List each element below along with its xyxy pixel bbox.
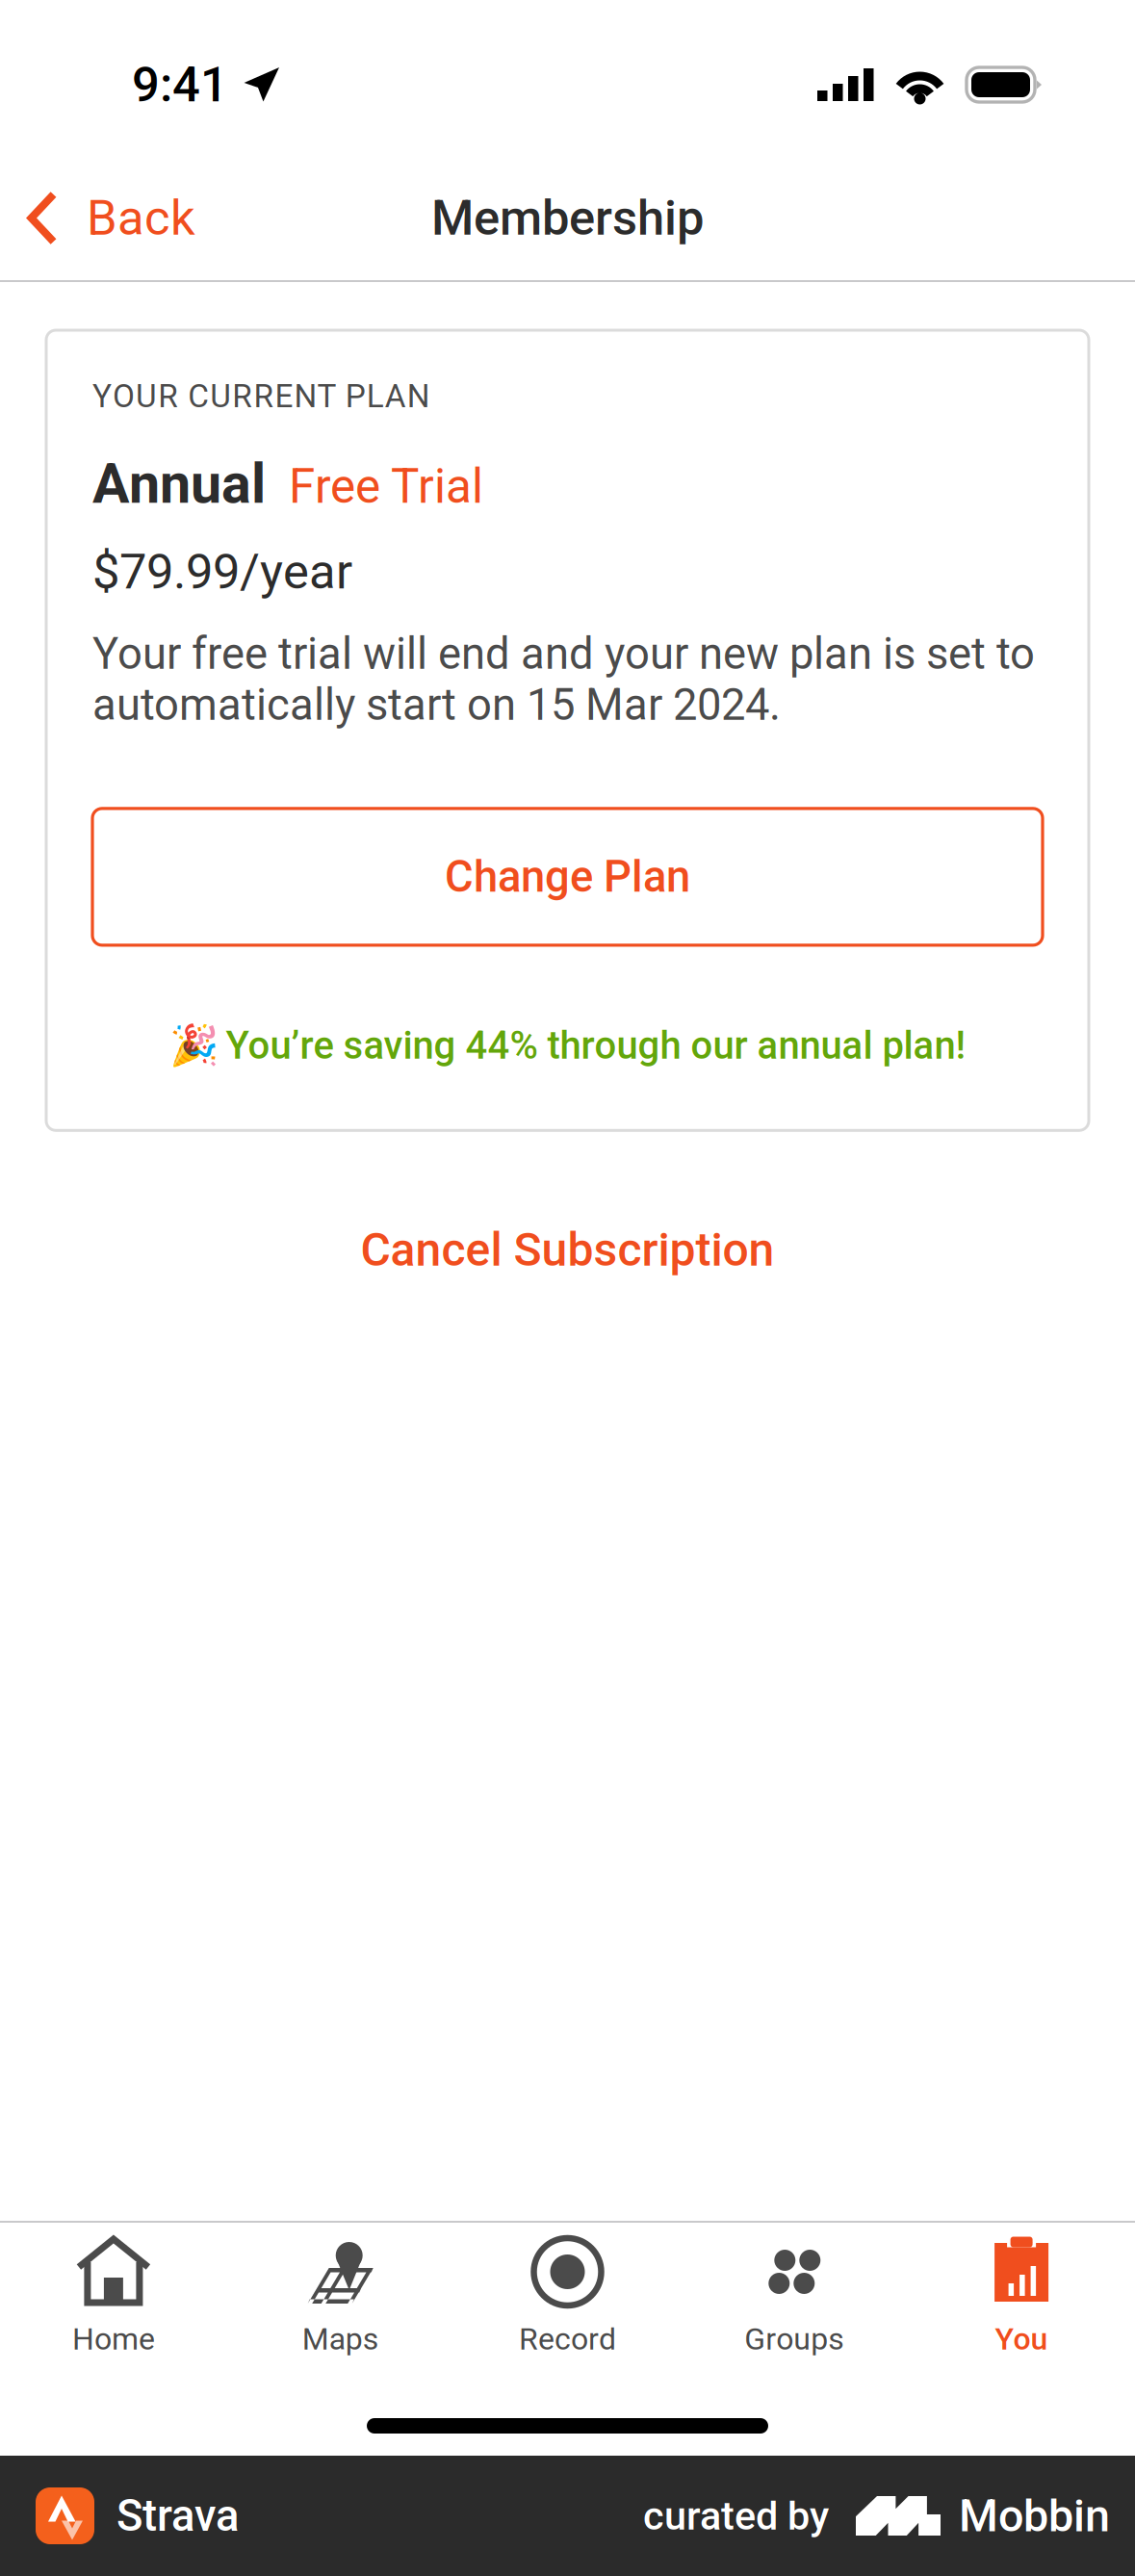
- button[interactable]: Groups: [681, 2223, 908, 2357]
- staticText: Free Trial: [289, 459, 483, 514]
- staticText: Mobbin: [959, 2490, 1110, 2542]
- button[interactable]: Record: [454, 2223, 681, 2357]
- button[interactable]: You: [908, 2223, 1135, 2357]
- staticText: Record: [519, 2321, 616, 2357]
- staticText: Annual: [92, 452, 266, 516]
- button[interactable]: Home: [0, 2223, 227, 2357]
- button[interactable]: Maps: [227, 2223, 454, 2357]
- staticText: You’re saving 44% through our annual pla…: [226, 1023, 966, 1068]
- staticText: Groups: [744, 2321, 845, 2357]
- staticText: 9:41: [132, 56, 228, 113]
- staticText: Your free trial will end and your new pl…: [92, 628, 1035, 730]
- staticText: Cancel Subscription: [361, 1223, 774, 1277]
- staticText: Home: [72, 2321, 155, 2357]
- button[interactable]: Back: [0, 170, 220, 266]
- staticText: Membership: [431, 189, 704, 247]
- staticText: 🎉: [169, 1022, 218, 1069]
- staticText: Strava: [116, 2490, 239, 2541]
- staticText: You: [995, 2321, 1048, 2357]
- staticText: $79.99/year: [92, 543, 352, 600]
- staticText: curated by: [643, 2493, 829, 2539]
- button[interactable]: Change Plan: [92, 809, 1043, 945]
- staticText: YOUR CURRENT PLAN: [92, 377, 430, 415]
- staticText: Change Plan: [445, 851, 690, 902]
- button[interactable]: Cancel Subscription: [0, 1190, 1135, 1310]
- staticText: Back: [87, 189, 195, 247]
- staticText: Maps: [302, 2321, 379, 2357]
